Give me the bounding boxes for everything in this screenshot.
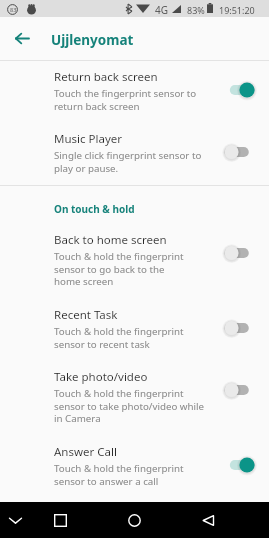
staticText: Return back screen [54, 69, 158, 85]
staticText: Back to home screen [54, 232, 167, 248]
button[interactable]: Recents [42, 502, 78, 538]
staticText: On touch & hold [54, 202, 135, 216]
button[interactable]: Recent Task, off [221, 317, 259, 339]
button[interactable]: Music Player [0, 125, 269, 172]
staticText: 19:51:20 [219, 4, 255, 16]
button[interactable]: Back to home screen [0, 226, 269, 285]
button[interactable]: Answer Call, on [221, 454, 259, 476]
button[interactable]: Answer Call [0, 438, 269, 485]
staticText: Recent Task [54, 307, 118, 323]
staticText: Take photo/video [54, 369, 148, 385]
button[interactable]: Take photo/video, off [221, 379, 259, 401]
staticText: Music Player [54, 131, 122, 147]
button[interactable]: Return back screen [0, 63, 269, 110]
button[interactable]: Return back screen, on [221, 79, 259, 101]
button[interactable]: Back [190, 502, 226, 538]
staticText: Answer Call [54, 444, 117, 460]
staticText: 83% [187, 4, 205, 16]
button[interactable]: Back to home screen, off [221, 242, 259, 264]
button[interactable]: Home [116, 502, 152, 538]
staticText: Ujjlenyomat [51, 31, 134, 49]
staticText: Touch & hold the fingerprint sensor to r… [54, 325, 184, 351]
button[interactable]: Take photo/video [0, 363, 269, 422]
staticText: 4G [155, 3, 168, 17]
button[interactable]: Music Player, off [221, 141, 259, 163]
staticText: Touch & hold the fingerprint sensor to g… [54, 250, 184, 288]
staticText: Touch & hold the fingerprint sensor to a… [54, 462, 184, 488]
button[interactable]: Back [8, 17, 36, 60]
button[interactable]: Recent Task [0, 301, 269, 348]
staticText: Touch the fingerprint sensor to return b… [54, 87, 197, 113]
staticText: Single click fingerprint sensor to play … [54, 149, 202, 175]
staticText: 83 [10, 6, 17, 13]
staticText: Touch & hold the fingerprint sensor to t… [54, 387, 205, 425]
button[interactable]: Hide keyboard [0, 502, 33, 538]
